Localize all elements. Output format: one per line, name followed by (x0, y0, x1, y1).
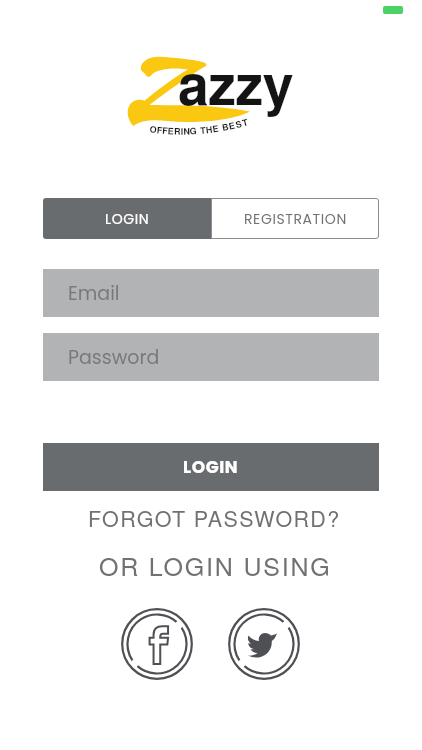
staticText: OR LOGIN USING (99, 547, 332, 583)
staticText: Email (68, 280, 120, 307)
staticText: azzy (178, 43, 294, 122)
staticText: LOGIN (105, 209, 150, 229)
button[interactable]: Password (43, 333, 379, 381)
button[interactable]: REGISTRATION (211, 198, 379, 239)
button[interactable]: Login with Facebook (121, 608, 193, 680)
button[interactable]: LOGIN (43, 198, 211, 239)
staticText: REGISTRATION (244, 209, 347, 229)
staticText: Password (68, 344, 160, 371)
staticText: LOGIN (183, 455, 239, 479)
button[interactable]: Login with Twitter (228, 608, 300, 680)
button[interactable]: FORGOT PASSWORD? (88, 502, 341, 533)
button[interactable]: Email (43, 269, 379, 317)
button[interactable]: LOGIN (43, 443, 379, 491)
